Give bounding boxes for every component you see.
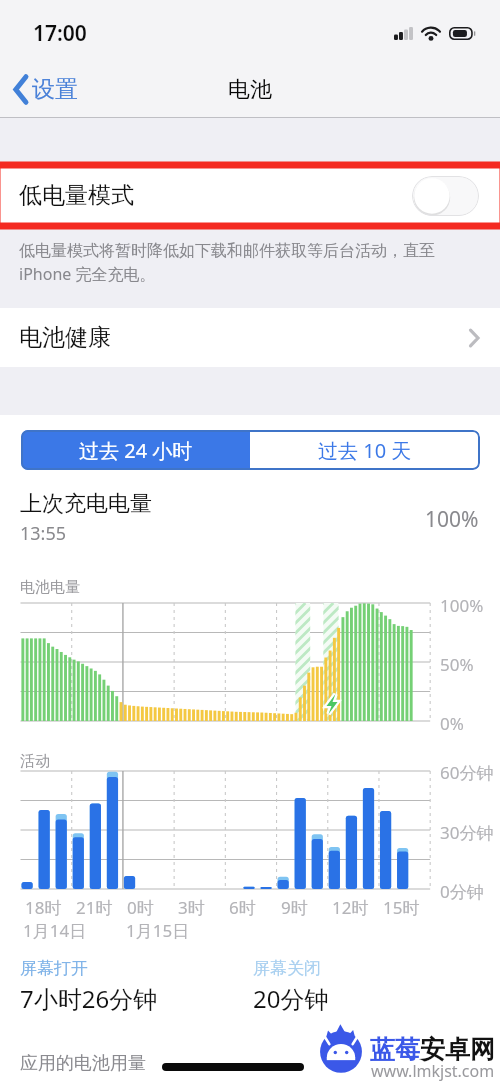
staticText: 屏幕打开 (20, 958, 88, 979)
staticText: 蓝莓 (370, 1034, 420, 1065)
staticText: 18时 (25, 896, 62, 919)
staticText: 电池电量 (20, 578, 80, 597)
staticText: 设置 (32, 75, 78, 104)
staticText: 12时 (332, 896, 369, 919)
staticText: 6时 (229, 896, 256, 919)
staticText: 0时 (127, 896, 154, 919)
staticText: www.lmkjst.com (371, 1060, 495, 1082)
button[interactable]: 过去 10 天 (250, 430, 480, 470)
button[interactable]: 过去 24 小时 (21, 430, 250, 470)
staticText: 上次充电电量 (20, 490, 152, 518)
staticText: 7小时26分钟 (20, 982, 158, 1015)
button[interactable]: 电池健康 (0, 308, 500, 367)
button[interactable]: 低电量模式 toggle (412, 176, 479, 216)
staticText: 低电量模式 (19, 181, 412, 210)
staticText: 60分钟 (440, 761, 494, 784)
staticText: 电池 (228, 76, 272, 104)
staticText: 17:00 (33, 19, 87, 48)
staticText: 30分钟 (440, 821, 494, 844)
button[interactable]: 低电量模式 (0, 162, 500, 229)
staticText: 21时 (76, 896, 113, 919)
button[interactable]: 设置 (0, 69, 88, 110)
staticText: 9时 (281, 896, 308, 919)
staticText: 屏幕关闭 (253, 958, 321, 979)
staticText: 3时 (178, 896, 205, 919)
staticText: 20分钟 (253, 982, 329, 1015)
staticText: 活动 (20, 752, 50, 771)
staticText: 13:55 (20, 521, 67, 546)
staticText: 100% (440, 594, 484, 617)
staticText: 1月14日 (23, 919, 87, 942)
staticText: 50% (440, 653, 474, 676)
staticText: 0% (440, 712, 464, 735)
staticText: 1月15日 (126, 919, 190, 942)
staticText: 应用的电池用量 (20, 1052, 146, 1075)
staticText: 过去 10 天 (318, 437, 412, 464)
staticText: 100% (425, 505, 479, 534)
staticText: 0分钟 (440, 880, 484, 903)
staticText: 电池健康 (19, 323, 469, 352)
staticText: 低电量模式将暂时降低如下载和邮件获取等后台活动，直至 iPhone 完全充电。 (19, 239, 484, 285)
staticText: 15时 (383, 896, 420, 919)
staticText: 过去 24 小时 (79, 437, 193, 464)
staticText: 安卓网 (420, 1034, 495, 1065)
